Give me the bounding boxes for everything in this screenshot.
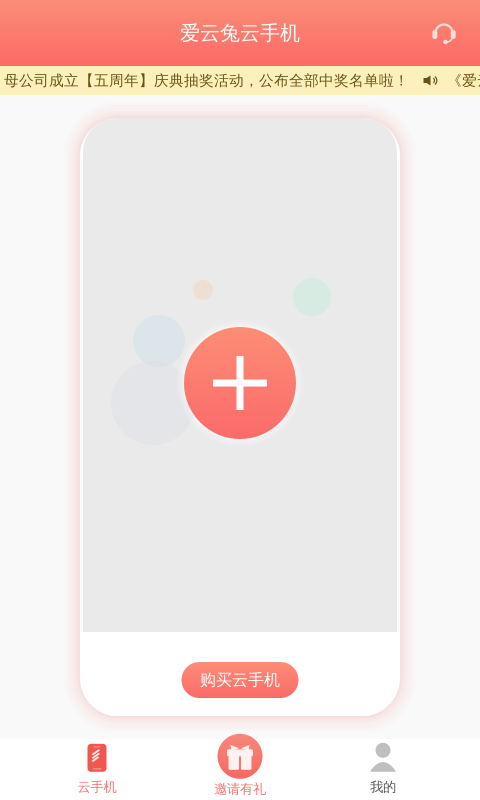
button[interactable]: 母公司成立【五周年】庆典抽奖活动，公布全部中奖名单啦！ <box>0 66 480 95</box>
staticText: 母公司成立【五周年】庆典抽奖活动，公布全部中奖名单啦！ <box>4 71 409 89</box>
staticText: 我的 <box>370 779 396 795</box>
button[interactable]: 我的 <box>311 739 454 800</box>
button[interactable]: 云手机 <box>25 739 168 800</box>
button[interactable]: 邀请有礼 <box>168 739 311 800</box>
staticText: 《爱云 <box>447 71 480 89</box>
staticText: 爱云兔云手机 <box>180 21 300 45</box>
button[interactable]: 客服 <box>422 12 466 54</box>
staticText: 购买云手机 <box>200 670 280 690</box>
staticText: 邀请有礼 <box>214 781 266 797</box>
button[interactable]: 新建云手机 <box>178 321 302 445</box>
button[interactable]: 购买云手机 <box>181 662 298 698</box>
staticText: 云手机 <box>77 779 116 795</box>
